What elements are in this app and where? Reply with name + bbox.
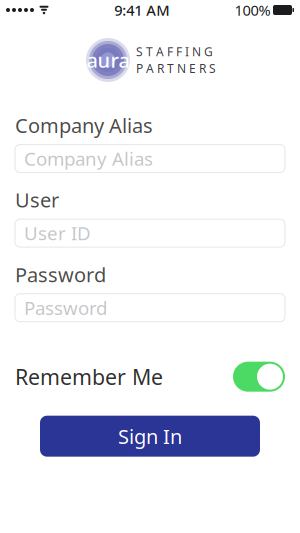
staticText: User ID (24, 221, 91, 245)
staticText: Sign In (118, 423, 182, 449)
staticText: Company Alias (15, 112, 153, 139)
button[interactable]: Remember Me (233, 362, 285, 392)
button[interactable]: Company Alias (15, 145, 285, 173)
button[interactable]: Sign In (40, 416, 260, 457)
staticText: P A R T N E R S (136, 60, 216, 76)
staticText: 100% (234, 0, 270, 20)
staticText: 9:41 AM (114, 0, 169, 20)
staticText: S T A F F I N G (136, 44, 213, 59)
button[interactable]: User ID (15, 219, 285, 247)
staticText: Password (24, 295, 107, 320)
staticText: Remember Me (15, 362, 163, 391)
staticText: Company Alias (24, 146, 153, 171)
staticText: aura (86, 47, 129, 73)
staticText: User (15, 187, 59, 213)
button[interactable]: Password (15, 294, 285, 322)
staticText: Password (15, 261, 106, 288)
